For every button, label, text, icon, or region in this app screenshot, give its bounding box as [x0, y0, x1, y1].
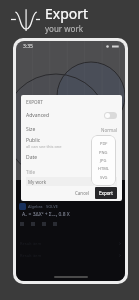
button[interactable]: PNG: [91, 150, 116, 155]
staticText: your work: [45, 23, 83, 34]
staticText: PNG: [99, 150, 108, 155]
staticText: PDF: [100, 141, 108, 146]
button[interactable]: Size: [26, 125, 117, 134]
button[interactable]: Cancel: [72, 188, 93, 198]
button[interactable]: PDF: [91, 141, 116, 146]
staticText: Algebra: [28, 204, 43, 209]
button[interactable]: tool 3: [52, 221, 58, 227]
staticText: ›: [119, 251, 121, 259]
staticText: Advanced: [26, 112, 50, 119]
staticText: Public: [26, 137, 41, 144]
staticText: Cancel: [75, 190, 90, 196]
button[interactable]: tool 2: [41, 221, 47, 227]
staticText: Result item: [20, 241, 42, 246]
button[interactable]: HTML: [91, 166, 116, 171]
button[interactable]: tool 1: [30, 221, 36, 227]
staticText: HTML: [98, 166, 109, 171]
staticText: SVG: [100, 175, 108, 180]
staticText: SOLVE: [46, 204, 58, 209]
staticText: Export: [99, 190, 113, 196]
button[interactable]: JPG: [91, 158, 116, 163]
staticText: EXPORT: [26, 99, 43, 105]
staticText: Aₙ = 3ΔX² + Σₙ₌₁ 0.8 X: [22, 211, 70, 218]
staticText: My work: [28, 179, 47, 185]
staticText: Result item: [20, 253, 42, 258]
staticText: all can see this one: [26, 144, 62, 149]
staticText: 3:35: [23, 43, 33, 50]
button[interactable]: Export: [95, 187, 117, 199]
button[interactable]: tool 0: [19, 221, 25, 227]
staticText: Normal: [101, 127, 117, 133]
staticText: ›: [119, 239, 121, 247]
staticText: Title: [26, 169, 35, 175]
staticText: Date: [26, 154, 38, 161]
staticText: JPG: [100, 158, 107, 163]
button[interactable]: Advanced: [26, 110, 117, 120]
staticText: Size: [26, 126, 36, 133]
button[interactable]: SVG: [91, 175, 116, 180]
button[interactable]: Public: [26, 137, 62, 149]
staticText: Export: [45, 4, 89, 23]
